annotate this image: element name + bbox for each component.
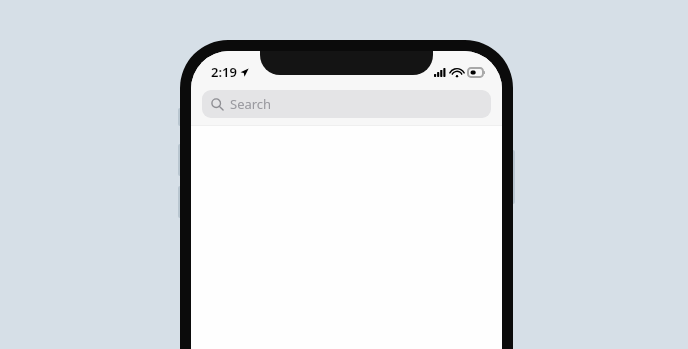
staticText: Search — [230, 95, 272, 113]
button[interactable]: Search — [202, 90, 491, 118]
other: Search — [211, 98, 224, 111]
staticText: 2:19 — [211, 63, 237, 81]
